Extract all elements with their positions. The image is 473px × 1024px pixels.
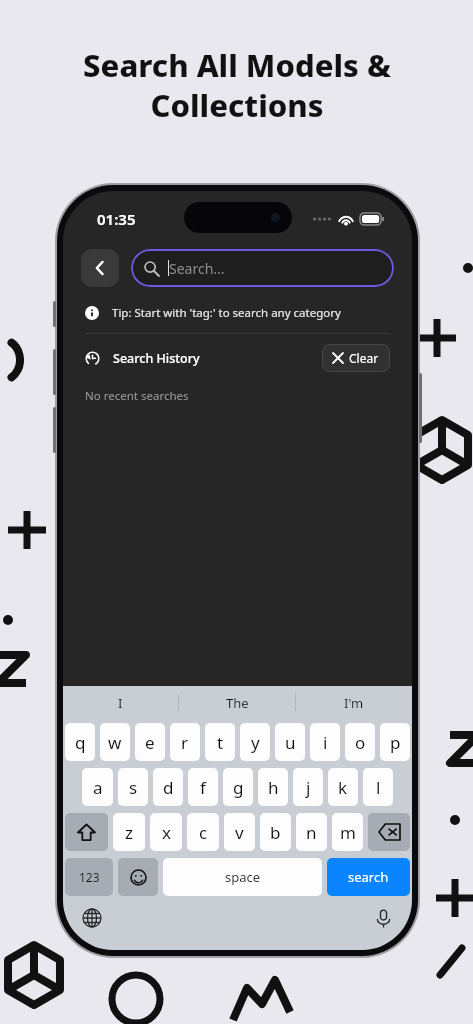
staticText: d	[163, 776, 174, 799]
staticText: 123	[79, 869, 100, 885]
button[interactable]: o	[345, 723, 375, 761]
staticText: a	[93, 776, 103, 799]
staticText: i	[323, 731, 328, 754]
button[interactable]: a	[82, 768, 113, 806]
staticText: Search All Models & Collections	[83, 44, 391, 126]
staticText: m	[340, 821, 356, 844]
button[interactable]: w	[100, 723, 130, 761]
staticText: 01:35	[97, 209, 136, 229]
staticText: search	[348, 868, 389, 886]
button[interactable]: b	[260, 813, 291, 851]
button[interactable]: Backspace	[368, 813, 410, 851]
button[interactable]: e	[135, 723, 165, 761]
button[interactable]: search	[327, 858, 410, 896]
button[interactable]: I'm	[296, 686, 412, 719]
button[interactable]: m	[332, 813, 363, 851]
button[interactable]: Dictation	[368, 903, 398, 933]
button[interactable]: g	[223, 768, 253, 806]
button[interactable]: The	[179, 686, 295, 719]
staticText: Search...	[169, 259, 225, 278]
button[interactable]: k	[328, 768, 358, 806]
staticText: h	[268, 776, 279, 799]
staticText: s	[129, 776, 138, 799]
staticText: x	[162, 821, 171, 844]
staticText: l	[376, 776, 381, 799]
button[interactable]: p	[380, 723, 410, 761]
staticText: space	[225, 868, 261, 886]
staticText: t	[217, 731, 224, 754]
button[interactable]: i	[310, 723, 340, 761]
button[interactable]: 123	[65, 858, 113, 896]
button[interactable]: v	[224, 813, 255, 851]
button[interactable]: space	[163, 858, 322, 896]
staticText: b	[270, 821, 281, 844]
button[interactable]: y	[240, 723, 270, 761]
staticText: I'm	[344, 694, 364, 712]
button[interactable]: t	[205, 723, 235, 761]
button[interactable]: n	[296, 813, 327, 851]
button[interactable]: d	[153, 768, 183, 806]
button[interactable]: Back	[81, 249, 119, 287]
button[interactable]: x	[150, 813, 182, 851]
staticText: v	[235, 821, 244, 844]
button[interactable]: Clear	[322, 344, 390, 372]
staticText: u	[285, 731, 296, 754]
button[interactable]: r	[170, 723, 200, 761]
staticText: p	[390, 731, 401, 754]
button[interactable]: I	[63, 686, 178, 719]
button[interactable]: u	[275, 723, 305, 761]
staticText: No recent searches	[85, 388, 189, 404]
button[interactable]: z	[113, 813, 145, 851]
button[interactable]: c	[187, 813, 219, 851]
staticText: g	[233, 776, 244, 799]
staticText: n	[306, 821, 317, 844]
staticText: j	[306, 776, 311, 799]
button[interactable]: Change keyboard	[77, 903, 107, 933]
button[interactable]: Search...	[131, 249, 394, 287]
staticText: The	[226, 694, 249, 712]
staticText: w	[108, 731, 122, 754]
button[interactable]: Shift	[65, 813, 108, 851]
button[interactable]: l	[363, 768, 393, 806]
button[interactable]: h	[258, 768, 288, 806]
staticText: y	[251, 731, 260, 754]
button[interactable]: q	[65, 723, 95, 761]
staticText: z	[125, 821, 133, 844]
staticText: I	[118, 694, 123, 712]
staticText: f	[200, 776, 206, 799]
staticText: k	[338, 776, 348, 799]
staticText: Tip: Start with 'tag:' to search any cat…	[112, 305, 341, 321]
staticText: Search History	[113, 350, 200, 367]
staticText: c	[199, 821, 208, 844]
button[interactable]: Emoji	[118, 858, 158, 896]
staticText: e	[145, 731, 155, 754]
button[interactable]: s	[118, 768, 148, 806]
staticText: o	[355, 731, 366, 754]
staticText: Clear	[349, 350, 379, 366]
button[interactable]: j	[293, 768, 323, 806]
button[interactable]: f	[188, 768, 218, 806]
staticText: r	[181, 731, 189, 754]
staticText: q	[75, 731, 86, 754]
